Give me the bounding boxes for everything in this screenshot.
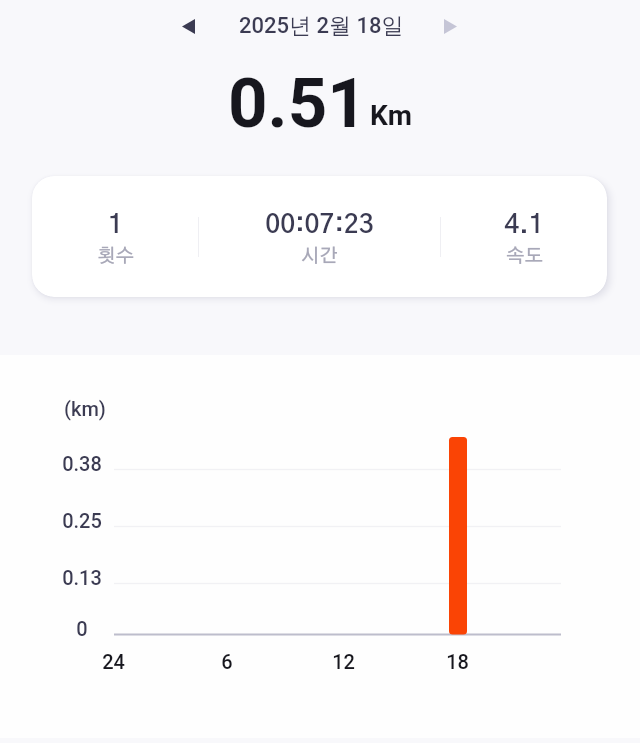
button[interactable]: 1 bbox=[32, 176, 607, 297]
staticText: 0.13 bbox=[62, 566, 102, 589]
staticText: 4.1 bbox=[504, 212, 544, 238]
staticText: Km bbox=[370, 99, 413, 132]
staticText: 횟수 bbox=[97, 247, 134, 266]
staticText: 0.51 bbox=[228, 63, 367, 144]
staticText: 18 bbox=[446, 650, 469, 673]
staticText: (km) bbox=[64, 397, 106, 420]
staticText: 6 bbox=[221, 650, 233, 673]
staticText: 2025년 2월 18일 bbox=[239, 12, 404, 40]
button[interactable]: Previous day bbox=[166, 4, 211, 49]
staticText: 1 bbox=[108, 212, 123, 238]
staticText: 0.25 bbox=[62, 509, 102, 532]
staticText: 시간 bbox=[301, 247, 338, 266]
staticText: 속도 bbox=[506, 247, 543, 266]
staticText: 24 bbox=[102, 650, 125, 673]
staticText: 0.38 bbox=[62, 452, 102, 475]
staticText: 00:07:23 bbox=[265, 212, 374, 238]
staticText: 0 bbox=[76, 617, 88, 640]
button[interactable]: Next day bbox=[428, 4, 473, 49]
staticText: 12 bbox=[332, 650, 355, 673]
